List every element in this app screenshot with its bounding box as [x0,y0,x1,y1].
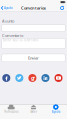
staticText: Ayuda [4,6,12,10]
staticText: Ayuda [52,110,60,113]
staticText: Asunto [2,18,14,23]
button[interactable]: Taller [22,105,45,119]
button[interactable]: Twitter [15,74,23,82]
staticText: Comentario [2,33,23,38]
staticText: Enviar [28,55,39,60]
button[interactable]: LinkedIn [41,74,49,82]
button[interactable]: Facebook [2,74,10,82]
button[interactable]: YouTube [54,74,62,82]
staticText: Taller [30,110,37,113]
staticText: g [31,74,34,82]
button[interactable]: Google Plus [28,74,36,82]
staticText: Escribe aqui su comentario [3,38,39,42]
button[interactable]: Ayuda [0,4,15,12]
staticText: Vehiculos [4,110,18,113]
button[interactable]: Ayuda [45,105,67,119]
button[interactable]: Actualizar [59,4,67,12]
button[interactable]: Vehiculos [0,105,22,119]
staticText: Comentarios [21,5,46,11]
button[interactable]: Enviar [2,54,65,62]
